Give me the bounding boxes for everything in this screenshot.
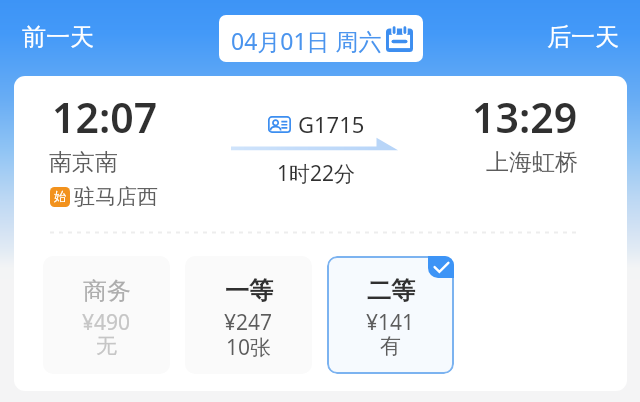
button[interactable]: 04月01日 周六 <box>219 15 423 62</box>
staticText: 04月01日 周六 <box>231 25 382 56</box>
staticText: 上海虹桥 <box>486 148 578 177</box>
staticText: 南京南 <box>49 148 118 177</box>
staticText: 驻马店西 <box>74 184 158 210</box>
button[interactable]: 一等 <box>185 256 312 374</box>
button[interactable]: 商务 <box>43 256 170 374</box>
other: Selected seat class <box>428 256 454 278</box>
staticText: G1715 <box>298 109 365 139</box>
staticText: ¥141 <box>366 308 415 337</box>
staticText: 13:29 <box>472 89 578 145</box>
staticText: 1时22分 <box>277 159 356 188</box>
staticText: 二等 <box>367 276 415 306</box>
staticText: 有 <box>380 333 401 359</box>
staticText: ¥247 <box>224 308 273 337</box>
staticText: ¥490 <box>82 308 131 337</box>
button[interactable]: 二等 <box>327 256 454 374</box>
staticText: 商务 <box>83 276 131 306</box>
button[interactable]: 前一天 <box>4 13 112 61</box>
staticText: 无 <box>96 333 117 359</box>
staticText: 12:07 <box>52 89 158 145</box>
button[interactable]: 12:07 <box>14 76 627 391</box>
staticText: 10张 <box>226 333 272 362</box>
other: Pick date <box>386 26 413 52</box>
staticText: 始 <box>54 189 67 205</box>
button[interactable]: 后一天 <box>529 13 637 61</box>
staticText: 前一天 <box>22 22 94 52</box>
staticText: 后一天 <box>547 22 619 52</box>
staticText: 一等 <box>225 276 273 306</box>
